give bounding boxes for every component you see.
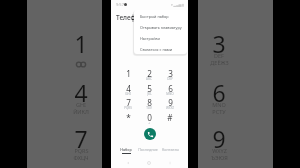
button[interactable]: # (161, 112, 179, 121)
staticText: MNO (166, 92, 174, 96)
staticText: 0 (147, 112, 152, 121)
staticText: ДЕЁЖЗ (210, 59, 229, 66)
button[interactable]: * (119, 112, 137, 121)
staticText: Последние (138, 147, 158, 152)
staticText: ЪЭЮЯ (211, 154, 228, 161)
staticText: DEF (214, 52, 224, 59)
button[interactable]: Связаться с нами (134, 44, 187, 54)
button[interactable]: Набор (114, 147, 138, 154)
staticText: JKL (147, 92, 152, 96)
staticText: 9 (212, 123, 226, 153)
staticText: PQRS (124, 106, 132, 110)
staticText: 5 (147, 83, 152, 92)
button[interactable]: 5 (140, 83, 158, 92)
staticText: ФХЦЧ (73, 154, 89, 161)
staticText: 6 (168, 83, 173, 92)
button[interactable]: 4 (119, 83, 137, 92)
staticText: # (167, 112, 173, 121)
button[interactable]: 0 (140, 112, 158, 121)
staticText: Настройки (140, 36, 160, 41)
button[interactable]: 6 (161, 83, 179, 92)
button[interactable]: 2 (140, 68, 158, 77)
button[interactable]: 3 (161, 68, 179, 77)
staticText: WXYZ (212, 147, 227, 154)
staticText: Связаться с нами (140, 47, 173, 52)
staticText: Открывать клавиатуру (140, 25, 182, 30)
staticText: РСТУ (212, 108, 226, 115)
staticText: MNO (212, 101, 226, 108)
button[interactable]: Контакты (158, 147, 182, 152)
staticText: GHI (125, 92, 131, 96)
button[interactable]: Home (146, 160, 152, 166)
button[interactable]: 8 (140, 97, 158, 106)
staticText: ▾ ▂▃▅ ▮ (171, 2, 185, 7)
staticText: + (148, 121, 150, 125)
staticText: PQRS (74, 147, 89, 154)
staticText: Набор (120, 147, 132, 152)
button[interactable]: Последние (136, 147, 160, 152)
button[interactable]: 9 (161, 97, 179, 106)
staticText: 2 (147, 68, 152, 77)
button[interactable]: 1 (119, 68, 137, 77)
staticText: 9 (168, 97, 173, 106)
staticText: Быстрый набор (140, 14, 169, 19)
staticText: 7 (126, 97, 131, 106)
staticText: WXYZ (166, 106, 174, 110)
staticText: 7 (74, 123, 88, 153)
staticText: ЙИКЛ (73, 108, 89, 115)
staticText: 3 (168, 68, 173, 77)
button[interactable]: Настройки (134, 33, 187, 44)
staticText: 4 (126, 83, 131, 92)
staticText: 6 (212, 77, 226, 107)
staticText: DEF (167, 77, 173, 81)
staticText: 4 (74, 77, 88, 107)
staticText: Контакты (162, 147, 179, 152)
staticText: ABC (146, 77, 152, 81)
button[interactable]: Call (144, 128, 156, 140)
staticText: 3 (212, 28, 226, 58)
staticText: 9:57 (116, 2, 124, 7)
staticText: * (126, 112, 131, 121)
button[interactable]: 7 (119, 97, 137, 106)
staticText: 8 (147, 97, 152, 106)
staticText: GHI (76, 101, 86, 108)
staticText: Телефон (116, 13, 144, 22)
staticText: TUV (146, 106, 152, 110)
button[interactable]: Быстрый набор (134, 11, 187, 22)
staticText: 1 (74, 28, 88, 58)
staticText: 1 (126, 68, 131, 77)
button[interactable]: Back (125, 160, 131, 166)
button[interactable]: Открывать клавиатуру (134, 22, 187, 33)
